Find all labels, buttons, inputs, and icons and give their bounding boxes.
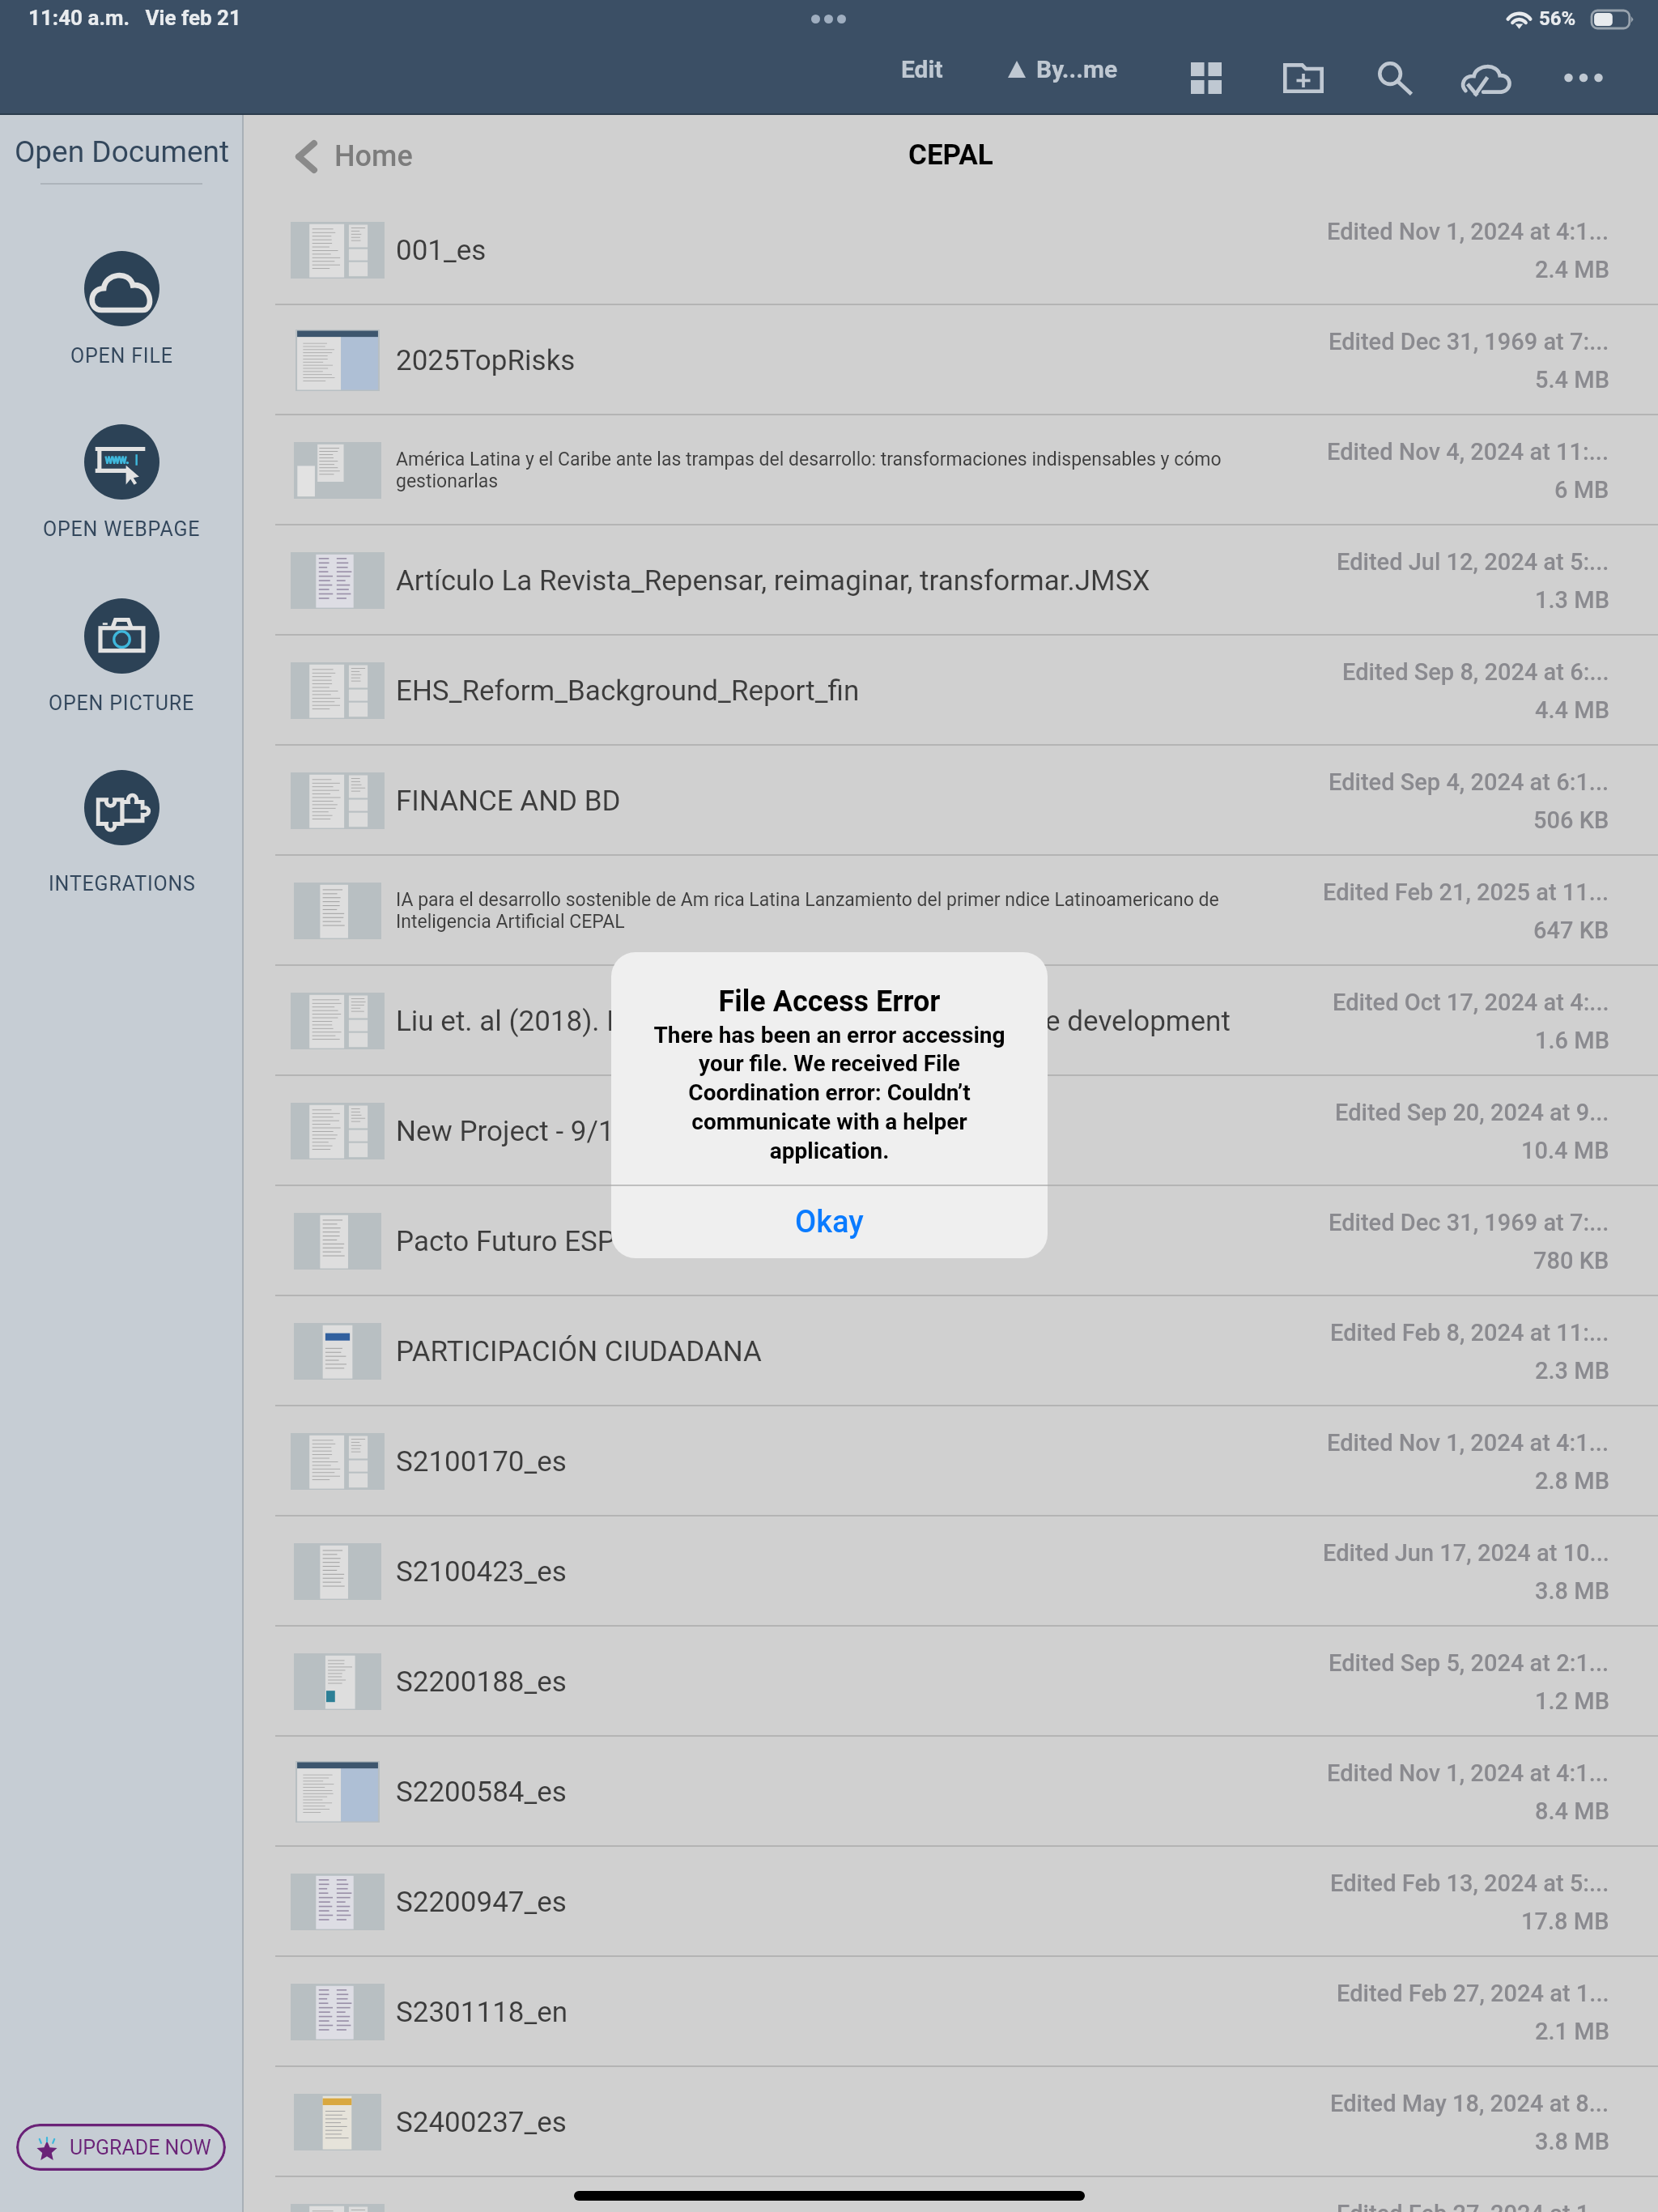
button[interactable]: Okay: [611, 1186, 1048, 1258]
staticText: Edit: [901, 55, 943, 83]
button[interactable]: INTEGRATIONS: [0, 770, 244, 895]
staticText: Okay: [795, 1204, 864, 1240]
staticText: S2100423_es: [396, 1555, 567, 1589]
staticText: There has been an error accessing your f…: [611, 1022, 1048, 1164]
staticText: S2200188_es: [396, 1665, 567, 1699]
button[interactable]: FINANCE AND BD: [244, 746, 1658, 856]
staticText: Edited Nov 1, 2024 at 4:1...: [1327, 1759, 1609, 1787]
button[interactable]: Liu et. al (2018). Nature sustainability…: [244, 966, 1658, 1076]
staticText: Edited Dec 31, 1969 at 7:...: [1329, 1209, 1609, 1236]
staticText: 1.6 MB: [1535, 1027, 1609, 1054]
button[interactable]: Pacto Futuro ESP: [244, 1186, 1658, 1296]
button[interactable]: PARTICIPACIÓN CIUDADANA: [244, 1296, 1658, 1406]
staticText: Edited Sep 8, 2024 at 6:...: [1342, 658, 1609, 686]
staticText: 506 KB: [1533, 806, 1609, 834]
button[interactable]: 001_es: [244, 195, 1658, 305]
staticText: 780 KB: [1533, 1247, 1609, 1274]
button[interactable]: New folder: [1274, 49, 1333, 107]
button[interactable]: New Project - 9/1: [244, 1076, 1658, 1186]
staticText: 3.8 MB: [1535, 2128, 1609, 2155]
staticText: 17.8 MB: [1521, 1908, 1609, 1935]
staticText: Open Document: [0, 134, 244, 169]
staticText: Edited Nov 4, 2024 at 11:...: [1327, 438, 1609, 466]
button[interactable]: Search: [1366, 49, 1424, 107]
button[interactable]: S2200584_es: [244, 1737, 1658, 1847]
button[interactable]: Edit: [888, 42, 956, 96]
staticText: Edited Feb 21, 2025 at 11...: [1323, 878, 1609, 906]
staticText: 4.4 MB: [1535, 696, 1609, 724]
staticText: S2100170_es: [396, 1445, 567, 1478]
button[interactable]: Cloud sync: [1457, 49, 1516, 107]
staticText: 2.4 MB: [1535, 256, 1609, 283]
staticText: Pacto Futuro ESP: [396, 1225, 615, 1258]
staticText: 5.4 MB: [1535, 366, 1609, 393]
staticText: 8.4 MB: [1535, 1797, 1609, 1825]
staticText: Home: [334, 139, 413, 173]
button[interactable]: Home: [289, 133, 419, 180]
staticText: OPEN PICTURE: [49, 691, 195, 715]
staticText: 56%: [1539, 7, 1576, 30]
staticText: Edited Nov 1, 2024 at 4:1...: [1327, 1429, 1609, 1457]
button[interactable]: EHS_Reform_Background_Report_fin: [244, 636, 1658, 746]
staticText: Edited Feb 8, 2024 at 11:...: [1330, 1319, 1609, 1346]
staticText: América Latina y el Caribe ante las tram…: [396, 449, 1230, 492]
button[interactable]: OPEN WEBPAGE: [0, 424, 244, 541]
button[interactable]: Artículo La Revista_Repensar, reimaginar…: [244, 525, 1658, 636]
button[interactable]: S2200947_es: [244, 1847, 1658, 1957]
staticText: Edited Jun 17, 2024 at 10...: [1323, 1539, 1609, 1567]
staticText: Edited Feb 27, 2024 at 1...: [1337, 2200, 1609, 2212]
staticText: 3.8 MB: [1535, 1577, 1609, 1605]
button[interactable]: S2200188_es: [244, 1627, 1658, 1737]
staticText: S2200947_es: [396, 1886, 567, 1919]
staticText: OPEN WEBPAGE: [43, 517, 201, 541]
staticText: By...me: [1036, 55, 1118, 83]
button[interactable]: UPGRADE NOW: [16, 2124, 226, 2171]
staticText: Liu et. al (2018). Nature sustainability…: [396, 1005, 1231, 1038]
staticText: INTEGRATIONS: [49, 872, 196, 895]
staticText: IA para el desarrollo sostenible de Am r…: [396, 889, 1230, 933]
button[interactable]: S2100423_es: [244, 1516, 1658, 1627]
button[interactable]: Grid view: [1177, 49, 1235, 107]
button[interactable]: S2400237_es: [244, 2067, 1658, 2177]
staticText: Edited Jul 12, 2024 at 5:...: [1337, 548, 1609, 576]
staticText: CEPAL: [908, 138, 993, 172]
staticText: 2.1 MB: [1535, 2018, 1609, 2045]
staticText: File Access Error: [611, 985, 1048, 1019]
staticText: OPEN FILE: [70, 344, 173, 368]
staticText: 001_es: [396, 234, 487, 267]
button[interactable]: IA para el desarrollo sostenible de Am r…: [244, 856, 1658, 966]
staticText: 6 MB: [1554, 476, 1609, 504]
staticText: Edited Oct 17, 2024 at 4:...: [1333, 989, 1609, 1016]
staticText: Edited Feb 13, 2024 at 5:...: [1330, 1870, 1609, 1897]
button[interactable]: S2100170_es: [244, 1406, 1658, 1516]
staticText: 2025TopRisks: [396, 344, 576, 377]
staticText: S2400237_es: [396, 2106, 567, 2139]
staticText: 11:40 a.m. Vie feb 21: [28, 6, 241, 30]
staticText: Edited Sep 20, 2024 at 9...: [1335, 1099, 1609, 1126]
staticText: S2200584_es: [396, 1776, 567, 1809]
button[interactable]: América Latina y el Caribe ante las tram…: [244, 415, 1658, 525]
staticText: PARTICIPACIÓN CIUDADANA: [396, 1335, 762, 1368]
staticText: FINANCE AND BD: [396, 785, 621, 818]
button[interactable]: More options: [1554, 49, 1613, 107]
staticText: Edited May 18, 2024 at 8...: [1330, 2090, 1609, 2117]
button[interactable]: 2025TopRisks: [244, 305, 1658, 415]
staticText: UPGRADE NOW: [70, 2136, 211, 2159]
staticText: Artículo La Revista_Repensar, reimaginar…: [396, 564, 1150, 598]
staticText: 2.3 MB: [1535, 1357, 1609, 1385]
button[interactable]: By...me: [995, 42, 1131, 96]
button[interactable]: OPEN PICTURE: [0, 598, 244, 715]
button[interactable]: S2400238_es: [244, 2177, 1658, 2212]
button[interactable]: OPEN FILE: [0, 251, 244, 368]
staticText: 1.2 MB: [1535, 1687, 1609, 1715]
staticText: 1.3 MB: [1535, 586, 1609, 614]
staticText: 10.4 MB: [1521, 1137, 1609, 1164]
staticText: 647 KB: [1533, 917, 1609, 944]
staticText: Edited Sep 5, 2024 at 2:1...: [1329, 1649, 1609, 1677]
button[interactable]: S2301118_en: [244, 1957, 1658, 2067]
staticText: S2301118_en: [396, 1996, 568, 2029]
staticText: 2.8 MB: [1535, 1467, 1609, 1495]
staticText: Edited Dec 31, 1969 at 7:...: [1329, 328, 1609, 355]
staticText: Edited Sep 4, 2024 at 6:1...: [1329, 768, 1609, 796]
staticText: New Project - 9/1: [396, 1115, 614, 1148]
